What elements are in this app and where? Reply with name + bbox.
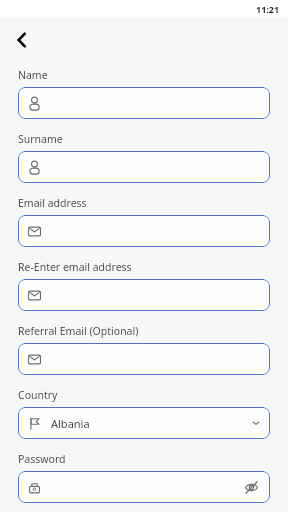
button[interactable] [18,87,270,119]
staticText: Re-Enter email address [18,260,132,274]
staticText: 11:21 [256,3,280,15]
staticText: Name [18,68,48,82]
button[interactable]: Back [0,18,44,62]
staticText: Email address [18,196,87,210]
staticText: Surname [18,132,63,146]
button[interactable]: Show password [18,471,270,503]
button[interactable]: Show password [241,477,261,497]
button[interactable]: Albania [18,407,270,439]
button[interactable] [18,279,270,311]
button[interactable] [18,215,270,247]
staticText: Albania [51,416,90,431]
staticText: Country [18,388,58,402]
button[interactable] [18,343,270,375]
button[interactable] [18,151,270,183]
staticText: Password [18,452,66,466]
staticText: Referral Email (Optional) [18,324,139,338]
